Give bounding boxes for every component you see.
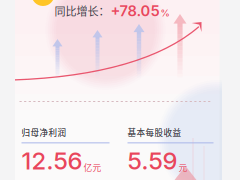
- staticText: %: [160, 7, 169, 19]
- staticText: 亿元: [83, 161, 101, 173]
- staticText: 12.56: [21, 146, 82, 175]
- staticText: +78.05: [110, 2, 159, 20]
- staticText: 同比增长：: [54, 3, 109, 19]
- staticText: 基本每股收益: [127, 126, 181, 138]
- staticText: 5.59: [127, 146, 177, 175]
- staticText: 元: [178, 161, 187, 173]
- staticText: 归母净利润: [21, 126, 66, 138]
